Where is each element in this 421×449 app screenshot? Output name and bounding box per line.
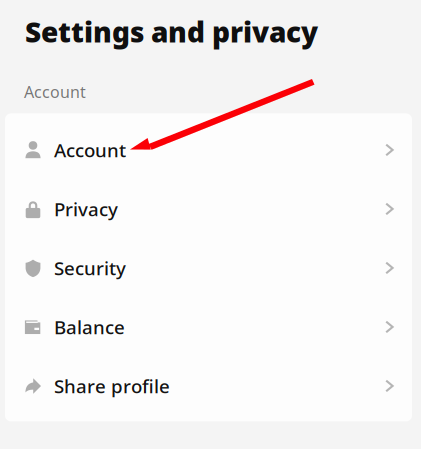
staticText: Account [24,81,86,102]
staticText: Share profile [54,373,170,398]
button[interactable]: Security [5,238,412,297]
button[interactable]: Balance [5,297,412,356]
button[interactable]: Privacy [5,179,412,238]
button[interactable]: Share profile [5,356,412,415]
staticText: Settings and privacy [25,13,318,50]
staticText: Account [54,137,126,162]
button[interactable]: Account [5,120,412,179]
staticText: Security [54,255,126,280]
staticText: Privacy [54,196,118,221]
staticText: Balance [54,314,125,339]
